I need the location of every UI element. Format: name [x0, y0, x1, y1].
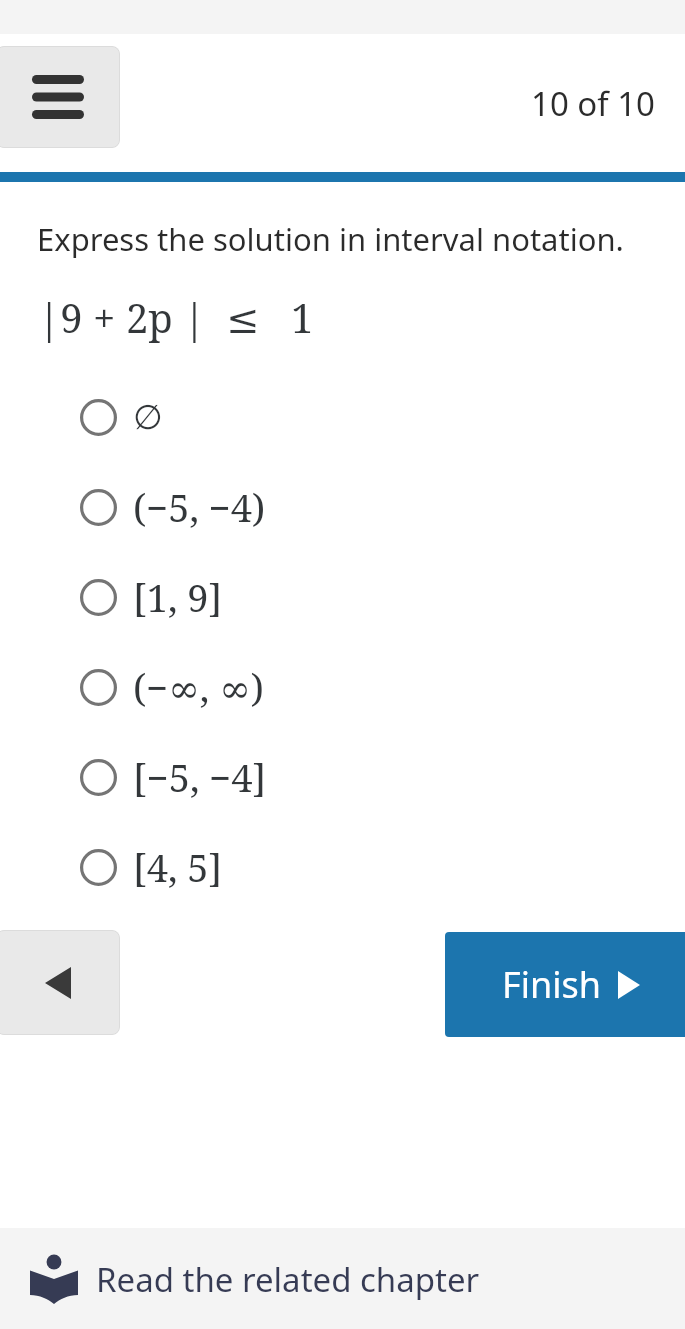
button[interactable]: Menu	[0, 46, 120, 148]
button[interactable]: [1, 9]	[0, 552, 685, 642]
button[interactable]: (−∞, ∞)	[0, 642, 685, 732]
button[interactable]: Previous	[0, 930, 120, 1035]
staticText: [1, 9]	[133, 571, 223, 623]
button[interactable]: [−5, −4]	[0, 732, 685, 822]
staticText: Finish	[502, 960, 602, 1009]
button[interactable]: Finish	[445, 932, 685, 1037]
staticText: [4, 5]	[133, 841, 223, 893]
button[interactable]: ∅	[0, 372, 685, 462]
button[interactable]: (−5, −4)	[0, 462, 685, 552]
staticText: |9 + 2p | ≤ 1	[38, 290, 314, 344]
staticText: (−∞, ∞)	[133, 661, 264, 713]
button[interactable]: [4, 5]	[0, 822, 685, 912]
staticText: 10 of 10	[531, 81, 655, 126]
staticText: (−5, −4)	[133, 481, 266, 533]
staticText: ∅	[133, 397, 163, 437]
staticText: Express the solution in interval notatio…	[37, 218, 624, 260]
staticText: Read the related chapter	[96, 1257, 480, 1302]
staticText: [−5, −4]	[133, 751, 267, 803]
button[interactable]: Read the related chapter	[0, 1228, 685, 1329]
